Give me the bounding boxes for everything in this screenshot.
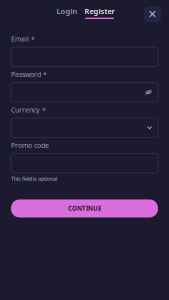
button[interactable]: Close (144, 6, 161, 22)
staticText: Promo code (11, 141, 49, 150)
staticText: Login (56, 6, 77, 16)
button[interactable]: Register (84, 6, 114, 19)
button[interactable] (11, 82, 158, 102)
button[interactable]: Login (56, 6, 77, 19)
staticText: CONTINUE (68, 204, 101, 213)
button[interactable] (11, 118, 158, 137)
button[interactable] (11, 47, 158, 66)
staticText: Register (84, 6, 114, 16)
button[interactable]: CONTINUE (11, 199, 158, 217)
staticText: Password * (11, 70, 47, 79)
staticText: Currency * (11, 105, 46, 114)
staticText: Email * (11, 34, 35, 43)
button[interactable] (11, 153, 158, 173)
staticText: This field is optional (11, 175, 57, 182)
